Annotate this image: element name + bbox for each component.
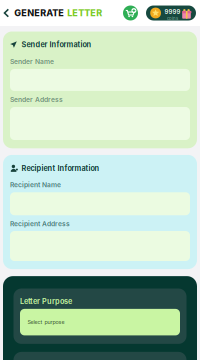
staticText: Recipient Name — [10, 181, 61, 189]
staticText: Select purpose — [27, 319, 64, 325]
button[interactable]: Back — [0, 0, 13, 26]
button[interactable]: Select purpose — [20, 309, 180, 335]
staticText: coins — [167, 16, 178, 21]
button[interactable]: Shop — [123, 5, 138, 20]
staticText: Recipient Information — [21, 164, 99, 173]
staticText: 9999 — [164, 8, 180, 16]
staticText: Sender Name — [10, 57, 54, 66]
staticText: LETTER — [67, 7, 102, 18]
staticText: Sender Address — [10, 96, 63, 104]
staticText: Recipient Address — [10, 220, 70, 228]
staticText: Sender Information — [21, 40, 91, 49]
button[interactable]: 9999 coins — [146, 5, 196, 20]
staticText: Letter Purpose — [20, 297, 72, 306]
staticText: GENERATE — [14, 7, 64, 18]
